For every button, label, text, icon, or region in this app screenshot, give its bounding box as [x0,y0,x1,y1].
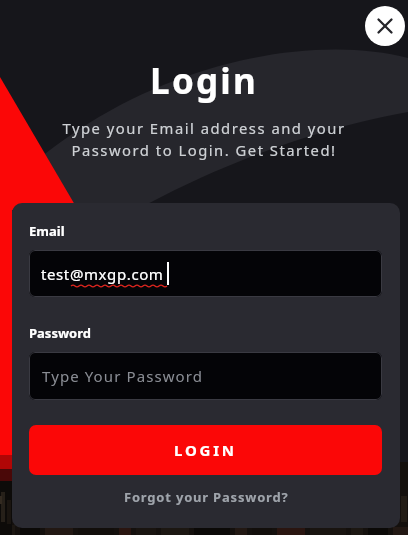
staticText: Email [29,222,65,240]
staticText: Login [0,57,408,105]
staticText: test@mxgp.com [41,264,164,284]
staticText: Password [29,324,91,342]
staticText: Forgot your Password? [124,488,289,506]
button[interactable]: test@mxgp.com [29,250,382,297]
staticText: Password to Login. Get Started! [0,140,408,160]
staticText: Type Your Password [42,366,204,386]
button[interactable]: Type Your Password [29,352,382,400]
staticText: Type your Email address and your [0,118,408,138]
staticText: LOGIN [174,440,237,460]
button[interactable]: LOGIN [29,425,382,475]
button[interactable] [365,6,405,46]
button[interactable]: Forgot your Password? [12,488,400,506]
